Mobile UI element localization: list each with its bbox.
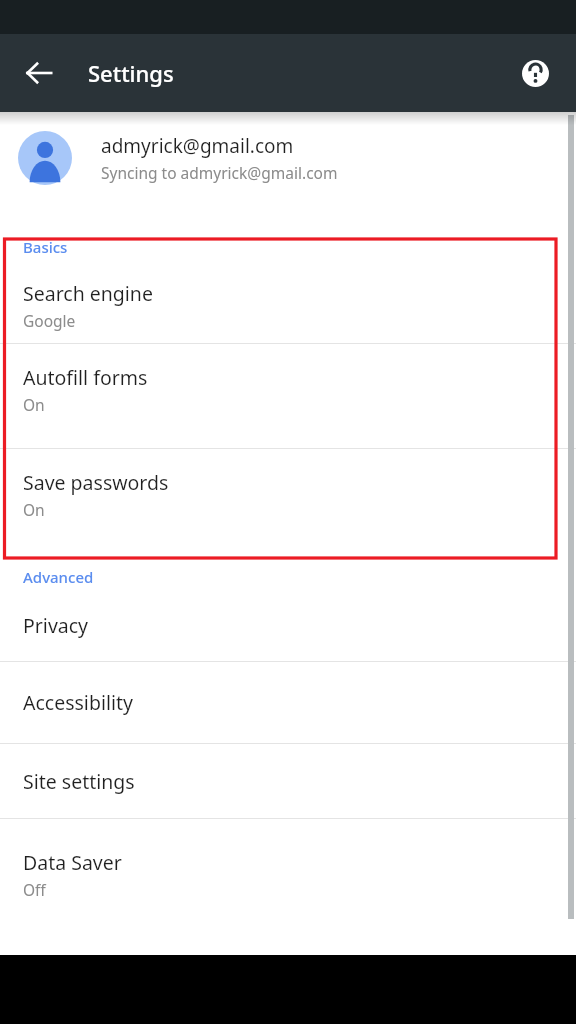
staticText: Save passwords (23, 469, 169, 496)
button[interactable]: Privacy (0, 590, 576, 661)
button[interactable]: Data Saver (0, 819, 576, 922)
staticText: Syncing to admyrick@gmail.com (101, 162, 338, 183)
button[interactable]: admyrick@gmail.com (0, 112, 576, 204)
staticText: Data Saver (23, 849, 122, 876)
button[interactable]: Accessibility (0, 662, 576, 743)
staticText: Privacy (23, 612, 89, 639)
staticText: admyrick@gmail.com (101, 133, 294, 159)
button[interactable]: Site settings (0, 744, 576, 818)
button[interactable]: Save passwords (0, 449, 576, 536)
button[interactable]: Autofill forms (0, 344, 576, 448)
staticText: On (23, 394, 45, 415)
staticText: On (23, 499, 45, 520)
staticText: Settings (88, 58, 174, 88)
staticText: Autofill forms (23, 364, 148, 391)
staticText: Search engine (23, 280, 153, 307)
button[interactable]: Search engine (0, 260, 576, 343)
staticText: Accessibility (23, 689, 133, 716)
staticText: Off (23, 879, 46, 900)
button[interactable]: Help (511, 49, 559, 97)
button[interactable]: Back (15, 49, 63, 97)
staticText: Basics (23, 237, 68, 257)
staticText: Google (23, 310, 76, 331)
staticText: Advanced (23, 567, 94, 587)
staticText: Site settings (23, 768, 135, 795)
